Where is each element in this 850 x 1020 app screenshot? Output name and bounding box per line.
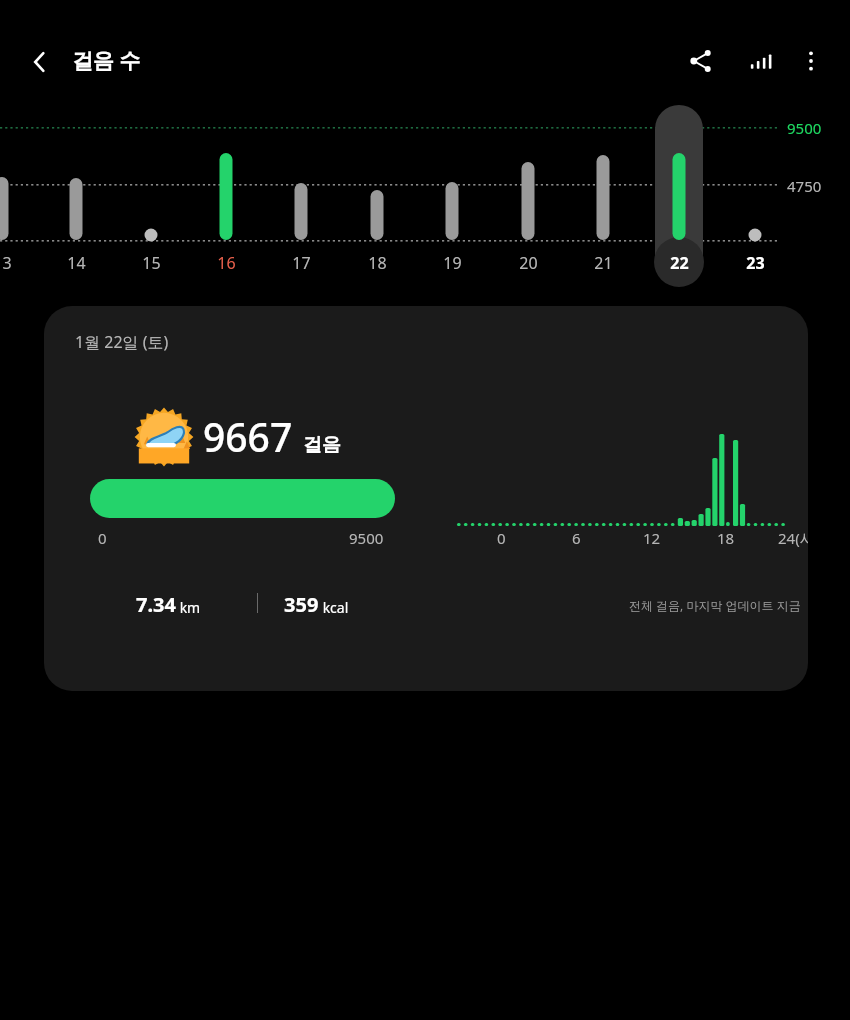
staticText: km	[176, 598, 201, 617]
button[interactable]: 20	[504, 252, 552, 274]
button[interactable]: 22	[655, 252, 703, 274]
staticText: 20	[519, 252, 538, 274]
staticText: 13	[0, 252, 12, 274]
staticText: 14	[67, 252, 86, 274]
button[interactable]: More options	[788, 38, 834, 84]
button[interactable]: 1월 22일 (토)	[44, 306, 808, 691]
staticText: 9500	[787, 118, 822, 138]
other: Goal badge	[134, 407, 194, 467]
button[interactable]: 23	[731, 252, 779, 274]
button[interactable]: 21	[579, 252, 627, 274]
staticText: 걸음	[303, 433, 341, 457]
staticText: 6	[572, 528, 581, 548]
staticText: 12	[643, 528, 661, 548]
button[interactable]: 14	[52, 252, 100, 274]
staticText: 15	[142, 252, 161, 274]
staticText: 19	[443, 252, 462, 274]
staticText: 7.34	[136, 591, 176, 618]
staticText: 9500	[349, 528, 384, 548]
staticText: 18	[368, 252, 387, 274]
staticText: 22	[670, 252, 689, 274]
staticText: 21	[594, 252, 613, 274]
staticText: 0	[497, 528, 506, 548]
button[interactable]: Share	[678, 38, 724, 84]
staticText: 4750	[787, 176, 822, 196]
button[interactable]: 16	[202, 252, 250, 274]
staticText: 17	[292, 252, 311, 274]
staticText: kcal	[319, 598, 349, 617]
staticText: 전체 걸음, 마지막 업데이트 지금	[629, 597, 801, 613]
staticText: 18	[717, 528, 735, 548]
button[interactable]: 17	[277, 252, 325, 274]
button[interactable]: Back	[16, 38, 64, 86]
button[interactable]: 18	[353, 252, 401, 274]
staticText: 1월 22일 (토)	[75, 331, 169, 353]
staticText: 걸음 수	[72, 46, 141, 75]
button[interactable]: Chart	[736, 38, 782, 84]
staticText: 24(시)	[778, 528, 808, 548]
staticText: 23	[746, 252, 765, 274]
button[interactable]: 19	[428, 252, 476, 274]
staticText: 9667	[203, 410, 293, 463]
button[interactable]: 13	[0, 252, 26, 274]
staticText: 359	[284, 591, 319, 618]
staticText: 0	[98, 528, 107, 548]
staticText: 16	[217, 252, 236, 274]
button[interactable]: 15	[127, 252, 175, 274]
